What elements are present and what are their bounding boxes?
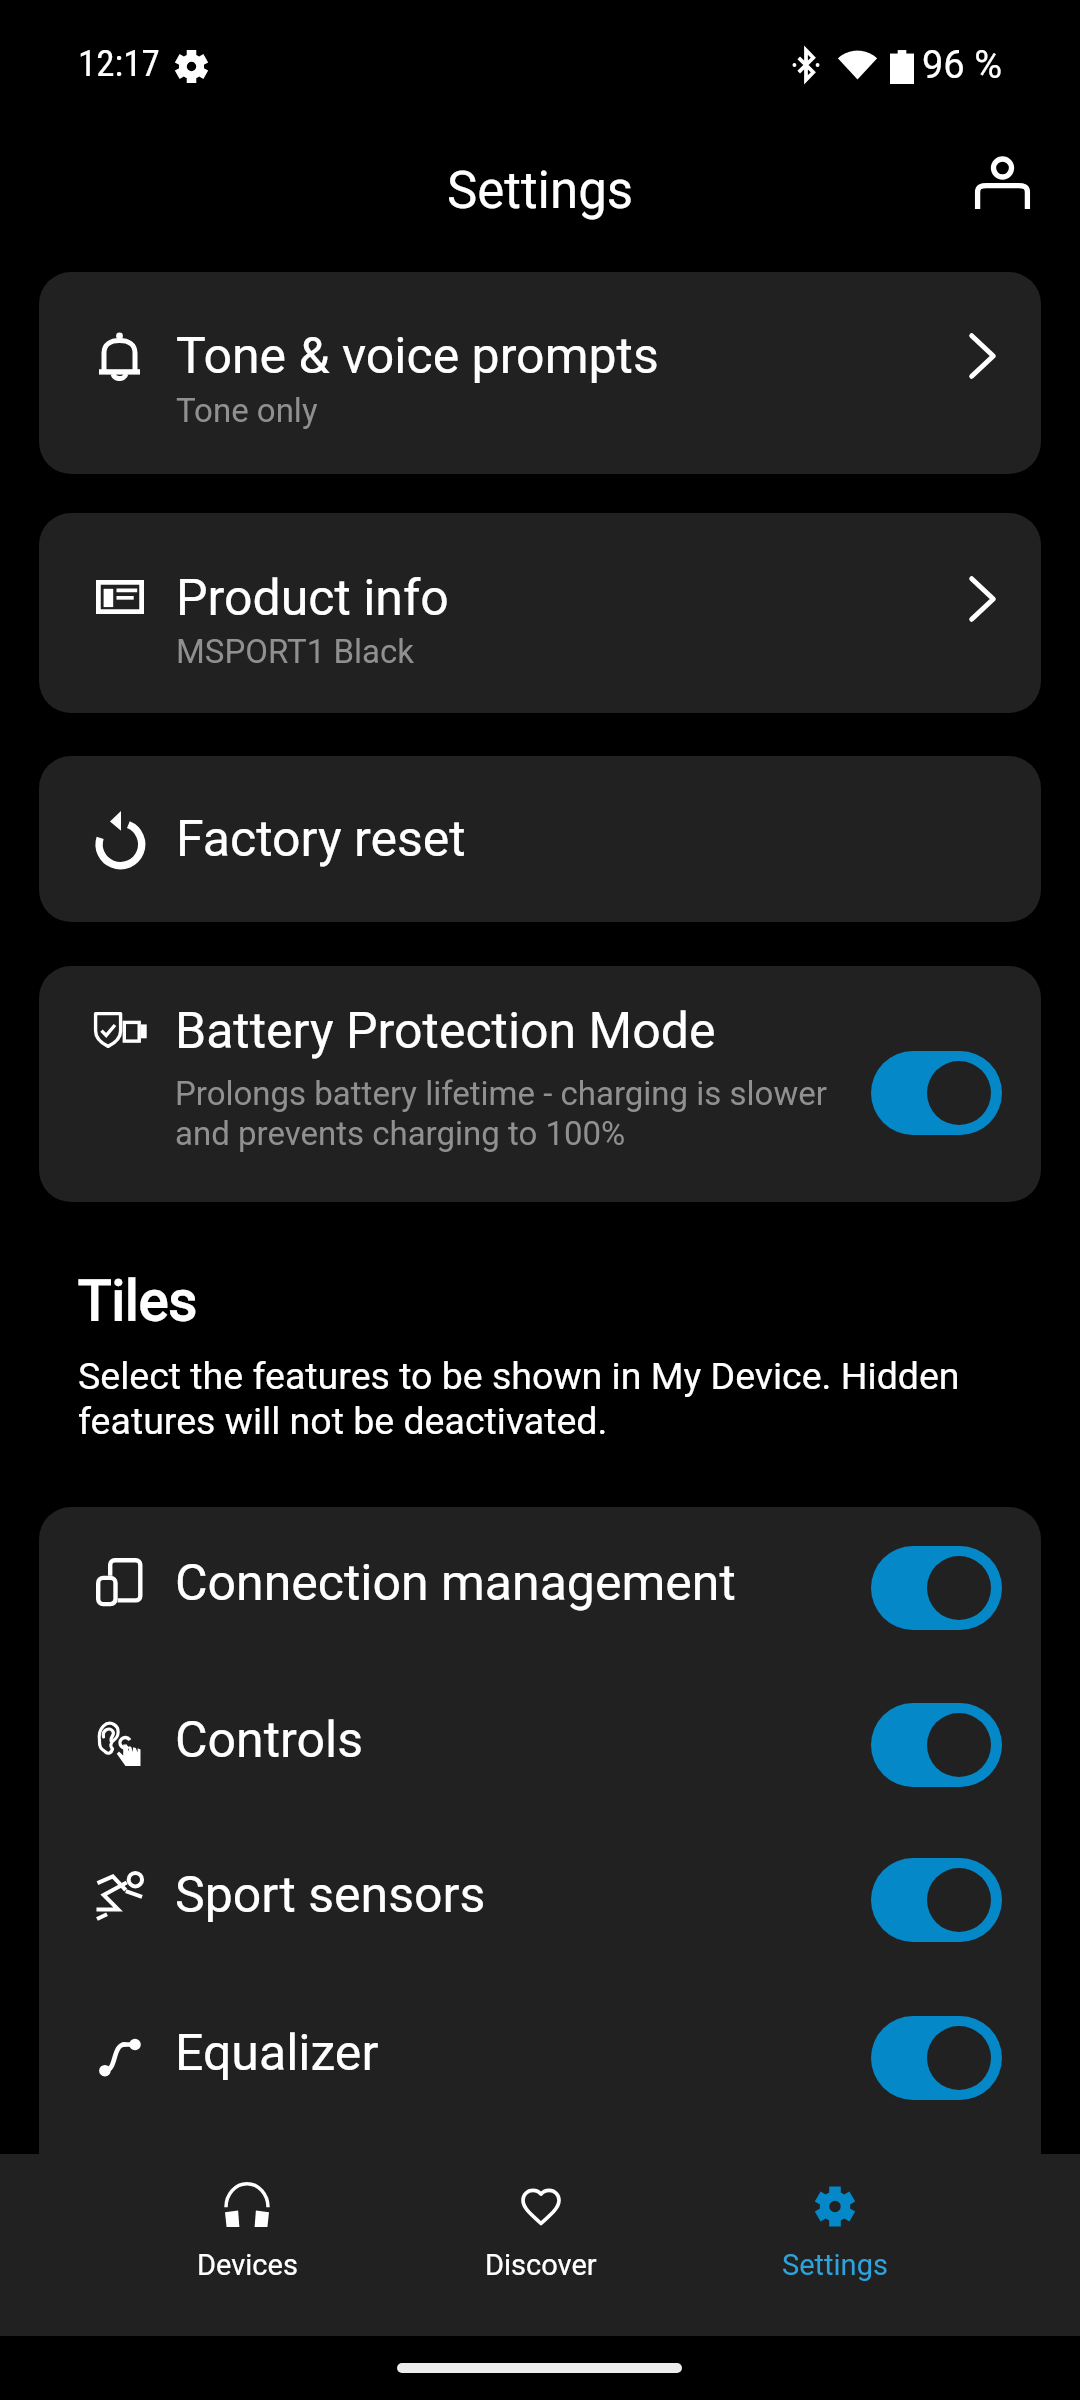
staticText: Sport sensors (175, 1866, 486, 1925)
button[interactable]: Connection management (39, 1510, 1041, 1667)
staticText: Tone & voice prompts (176, 327, 659, 386)
staticText: Prolongs battery lifetime - charging is … (175, 1074, 855, 1153)
button[interactable]: Toggle (871, 1703, 1002, 1787)
staticText: Controls (175, 1711, 363, 1770)
button[interactable]: Account (957, 145, 1049, 225)
button[interactable]: Product info (39, 513, 1041, 713)
button[interactable]: Sport sensors (39, 1822, 1041, 1979)
staticText: Devices (197, 2248, 298, 2282)
button[interactable]: Settings (655, 2154, 1015, 2336)
staticText: Discover (485, 2248, 597, 2282)
staticText: Connection management (175, 1554, 736, 1613)
staticText: MSPORT1 Black (176, 632, 414, 671)
staticText: Tiles (78, 1268, 198, 1334)
button[interactable]: Toggle (871, 2016, 1002, 2100)
staticText: Factory reset (176, 810, 466, 869)
button[interactable]: Toggle (871, 1051, 1002, 1135)
staticText: Settings (0, 161, 1080, 221)
button[interactable]: Devices (67, 2154, 427, 2336)
staticText: Tone only (176, 391, 318, 430)
button[interactable]: Toggle (871, 1546, 1002, 1630)
staticText: Settings (782, 2248, 888, 2282)
button[interactable]: Toggle (871, 1858, 1002, 1942)
staticText: Select the features to be shown in My De… (78, 1354, 1053, 1443)
button[interactable]: Equalizer (39, 1980, 1041, 2137)
staticText: 12:17 (78, 42, 160, 85)
button[interactable]: Controls (39, 1667, 1041, 1824)
staticText: Equalizer (175, 2024, 379, 2083)
button[interactable]: Discover (361, 2154, 721, 2336)
button[interactable]: Tone & voice prompts (39, 272, 1041, 474)
staticText: 96 % (922, 43, 1002, 88)
button[interactable]: Battery Protection Mode (39, 966, 1041, 1202)
staticText: Product info (176, 569, 449, 628)
button[interactable]: Factory reset (39, 756, 1041, 922)
staticText: Battery Protection Mode (175, 1002, 716, 1061)
